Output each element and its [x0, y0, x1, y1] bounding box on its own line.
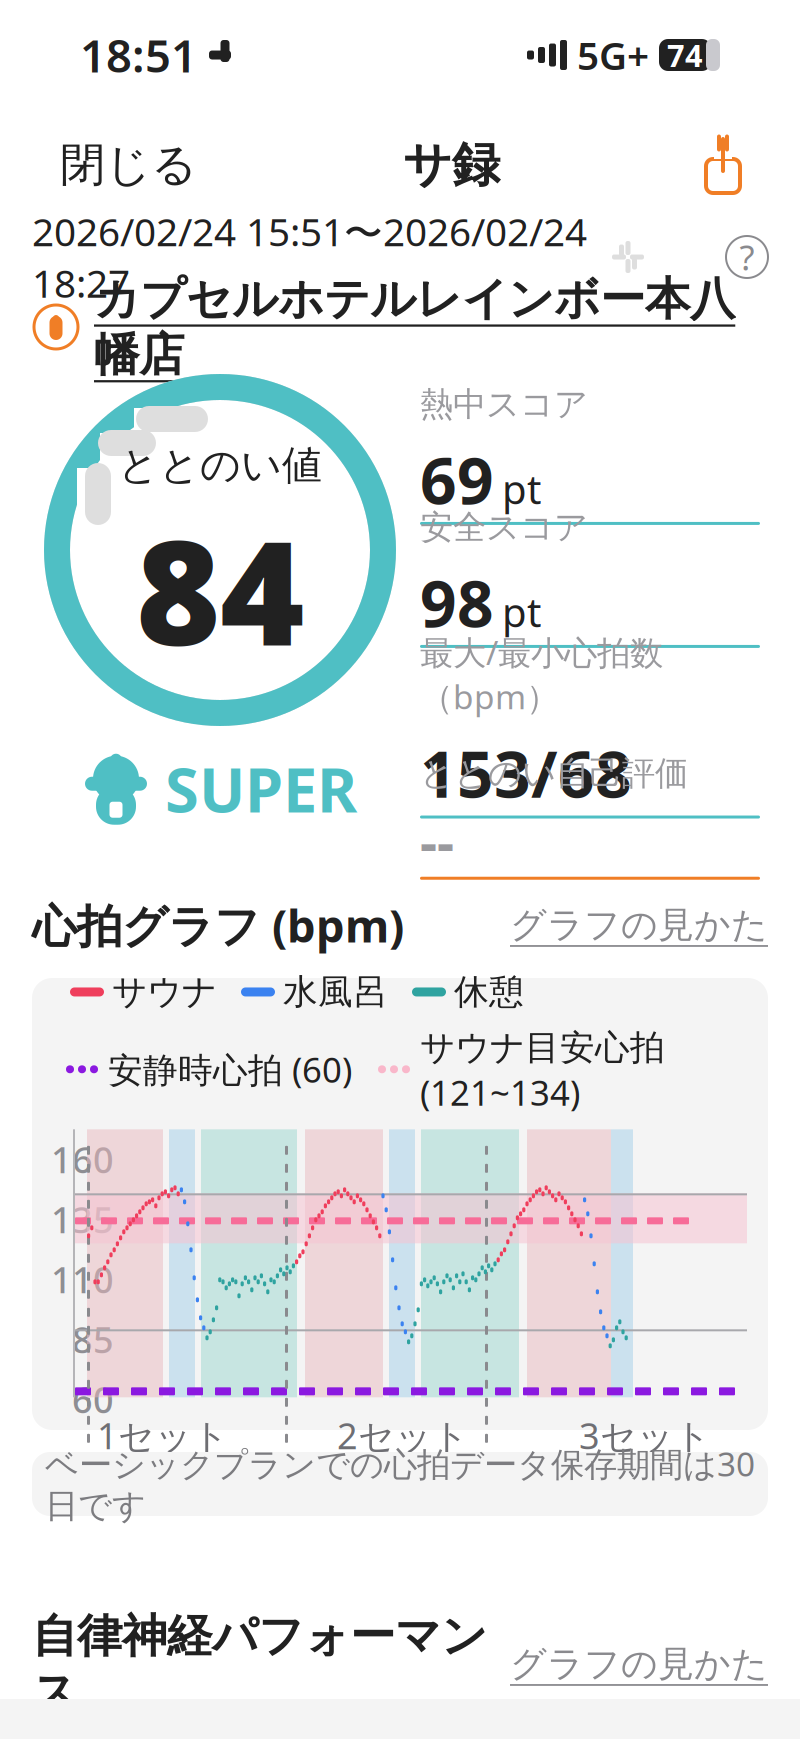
staticText: pt [502, 462, 541, 515]
staticText: 3セット [579, 1411, 711, 1459]
staticText: グラフの見かた [510, 903, 768, 947]
staticText: 1セット [97, 1411, 229, 1459]
staticText: ととのい自己評価 [420, 753, 688, 794]
button[interactable]: ヘルプ [726, 236, 768, 278]
staticText: 心拍グラフ (bpm) [32, 895, 404, 955]
staticText: 最大/最小心拍数（bpm） [420, 630, 663, 718]
staticText: ベーシックプランでの心拍データ保存期間は30日です [45, 1441, 755, 1527]
staticText: サウナ [112, 971, 217, 1013]
staticText: ? [739, 234, 754, 280]
staticText: 74 [667, 35, 703, 75]
button[interactable]: 共有 [680, 122, 766, 208]
staticText: 安全スコア [420, 507, 588, 548]
staticText: 18:51 [80, 25, 197, 85]
staticText: カプセルホテルレインボー本八幡店 [94, 271, 735, 383]
staticText: サ録 [403, 135, 500, 194]
staticText: 水風呂 [283, 971, 388, 1013]
staticText: ととのい値 [118, 441, 322, 490]
staticText: 110 [51, 1255, 114, 1303]
staticText: 135 [51, 1195, 114, 1243]
staticText: 84 [136, 494, 304, 685]
staticText: 160 [51, 1135, 114, 1183]
staticText: 85 [72, 1315, 114, 1363]
staticText: 休憩 [454, 971, 524, 1013]
staticText: SUPER [165, 748, 357, 829]
staticText: 98 [420, 560, 494, 645]
staticText: 69 [420, 437, 494, 522]
staticText: 5G+ [577, 29, 649, 81]
staticText: サウナ目安心拍 (121~134) [420, 1023, 665, 1115]
button[interactable]: 閉じる [34, 122, 223, 208]
staticText: 153/68 [420, 730, 632, 815]
staticText: 2セット [337, 1411, 469, 1459]
staticText: -- [420, 806, 454, 877]
staticText: グラフの見かた [510, 1642, 768, 1686]
button[interactable]: グラフの見かた [510, 903, 768, 947]
staticText: 安静時心拍 (60) [108, 1046, 352, 1092]
button[interactable]: カプセルホテルレインボー本八幡店 [0, 294, 800, 360]
staticText: pt [502, 585, 541, 638]
staticText: 2026/02/24 15:51〜2026/02/24 18:27 [32, 206, 587, 308]
staticText: 熱中スコア [420, 384, 588, 425]
staticText: 閉じる [60, 137, 197, 193]
button[interactable]: グラフの見かた [510, 1642, 768, 1686]
staticText: 自律神経パフォーマンス [32, 1608, 487, 1720]
staticText: 60 [72, 1375, 114, 1423]
